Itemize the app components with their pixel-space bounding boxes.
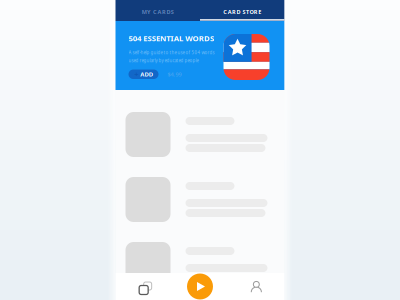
button[interactable]: Profile	[228, 273, 284, 300]
staticText: MY CARDS	[142, 8, 174, 16]
staticText: A self-help guide to the use of 504 word…	[128, 49, 214, 55]
staticText: $4.99	[167, 70, 181, 78]
button[interactable]: CARD STORE	[200, 8, 284, 15]
staticText: used regularly by educated people	[128, 57, 198, 63]
staticText: +	[134, 69, 138, 79]
staticText: ADD	[140, 70, 153, 78]
button[interactable]: Play	[172, 273, 228, 300]
button[interactable]: My Cards	[115, 273, 172, 300]
button[interactable]: MY CARDS	[115, 8, 200, 15]
button[interactable]: +	[128, 69, 158, 79]
staticText: 504 ESSENTIAL WORDS	[128, 33, 214, 43]
staticText: CARD STORE	[223, 8, 261, 16]
